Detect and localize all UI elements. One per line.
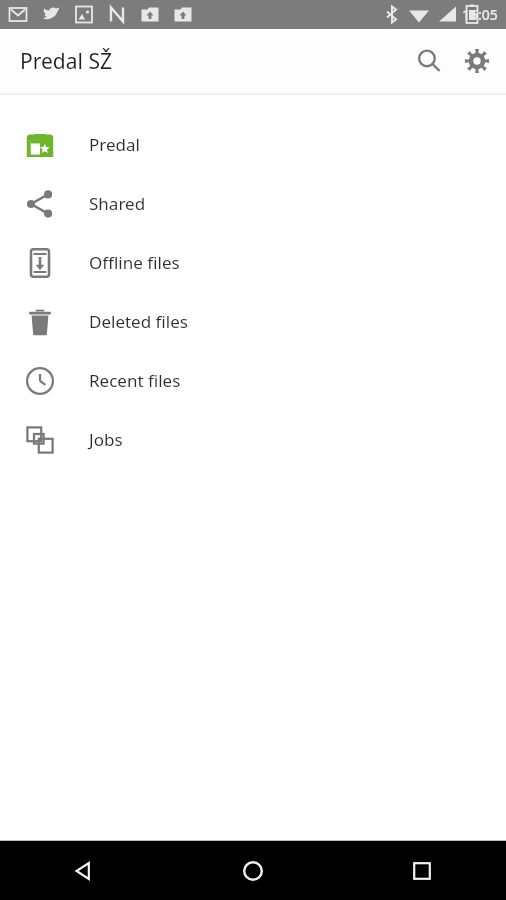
staticText: Offline files bbox=[89, 251, 180, 274]
button[interactable]: Recent apps bbox=[337, 841, 506, 900]
button[interactable]: Search bbox=[405, 37, 453, 85]
button[interactable]: Settings bbox=[453, 37, 501, 85]
staticText: 15:05 bbox=[462, 5, 498, 24]
button[interactable]: Offline files bbox=[0, 233, 506, 292]
button[interactable]: Recent files bbox=[0, 351, 506, 410]
button[interactable]: Deleted files bbox=[0, 292, 506, 351]
button[interactable]: Predal bbox=[0, 115, 506, 174]
button[interactable]: Home bbox=[168, 841, 337, 900]
staticText: Recent files bbox=[89, 369, 181, 392]
staticText: Shared bbox=[89, 192, 146, 215]
staticText: Jobs bbox=[89, 428, 123, 451]
staticText: Predal SŽ bbox=[20, 47, 112, 76]
button[interactable]: Jobs bbox=[0, 410, 506, 469]
button[interactable]: Shared bbox=[0, 174, 506, 233]
button[interactable]: Back bbox=[0, 841, 168, 900]
staticText: Deleted files bbox=[89, 310, 188, 333]
staticText: Predal bbox=[89, 133, 140, 156]
